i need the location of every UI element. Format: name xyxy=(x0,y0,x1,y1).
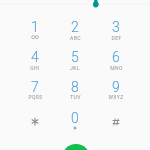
staticText: 2 xyxy=(71,19,79,35)
staticText: DEF xyxy=(111,35,122,41)
button[interactable]: 9 xyxy=(96,73,136,101)
button[interactable]: 6 xyxy=(96,43,136,71)
button[interactable]: Call xyxy=(62,144,90,150)
staticText: 0 xyxy=(71,110,79,126)
staticText: 5 xyxy=(71,49,79,65)
staticText: JKL xyxy=(70,65,80,71)
staticText: TUV xyxy=(70,94,81,100)
button[interactable]: Star xyxy=(15,104,55,132)
button[interactable]: 2 xyxy=(55,13,95,41)
staticText: MNO xyxy=(110,65,123,71)
button[interactable]: 4 xyxy=(15,43,55,71)
button[interactable]: 7 xyxy=(15,73,55,101)
button[interactable]: Pound xyxy=(96,104,136,132)
button[interactable]: 1 xyxy=(15,13,55,41)
button[interactable]: 3 xyxy=(96,13,136,41)
staticText: 3 xyxy=(112,19,120,35)
button[interactable]: 0 xyxy=(55,104,95,132)
staticText: ABC xyxy=(70,35,81,41)
staticText: 7 xyxy=(31,79,39,95)
staticText: 6 xyxy=(112,49,120,65)
button[interactable]: 5 xyxy=(55,43,95,71)
staticText: WXYZ xyxy=(108,94,124,100)
staticText: GHI xyxy=(30,65,40,71)
button[interactable]: 8 xyxy=(55,73,95,101)
staticText: PQRS xyxy=(28,94,43,100)
staticText: 9 xyxy=(112,79,120,95)
other: Number field xyxy=(88,0,104,10)
staticText: 8 xyxy=(71,79,79,95)
staticText: 4 xyxy=(31,49,39,65)
staticText: 1 xyxy=(31,19,39,35)
